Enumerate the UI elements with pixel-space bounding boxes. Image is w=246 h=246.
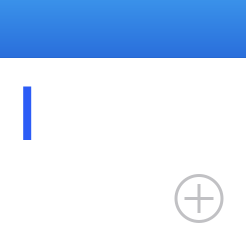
button[interactable]: Text field — [0, 86, 246, 140]
button[interactable]: Add — [176, 175, 222, 221]
